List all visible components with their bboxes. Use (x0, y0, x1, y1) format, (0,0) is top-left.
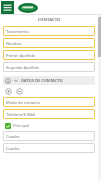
button[interactable]: Menu (1, 1, 14, 14)
staticText: Modo de contacto (6, 100, 41, 105)
button[interactable]: Cuadro (3, 131, 95, 141)
staticText: Primer Apellido (6, 53, 36, 58)
staticText: Tratamiento (6, 29, 29, 34)
button[interactable]: Telefono/E-Mail (3, 109, 95, 119)
button[interactable]: DATOS DE CONTACTO (3, 76, 95, 85)
button[interactable]: Remove contact (16, 88, 23, 95)
button[interactable]: Nombre (3, 38, 95, 48)
button[interactable]: Modo de contacto (3, 97, 95, 107)
button[interactable]: Tratamiento (3, 26, 95, 36)
button[interactable]: Primer Apellido (3, 50, 95, 60)
button[interactable]: Principal (3, 121, 95, 130)
staticText: CONTACTO (3, 17, 95, 23)
staticText: Segundo Apellido (6, 65, 40, 70)
staticText: Cuadro (6, 146, 20, 151)
staticText: Principal (13, 123, 30, 128)
staticText: Cuadro (6, 134, 20, 139)
button[interactable]: Cuadro (3, 143, 95, 153)
button[interactable]: Add contact (5, 88, 12, 95)
staticText: DATOS DE CONTACTO (21, 78, 63, 83)
button[interactable]: Segundo Apellido (3, 62, 95, 72)
staticText: Nombre (6, 41, 22, 46)
staticText: Telefono/E-Mail (6, 112, 36, 117)
button[interactable]: Logo (18, 3, 38, 13)
